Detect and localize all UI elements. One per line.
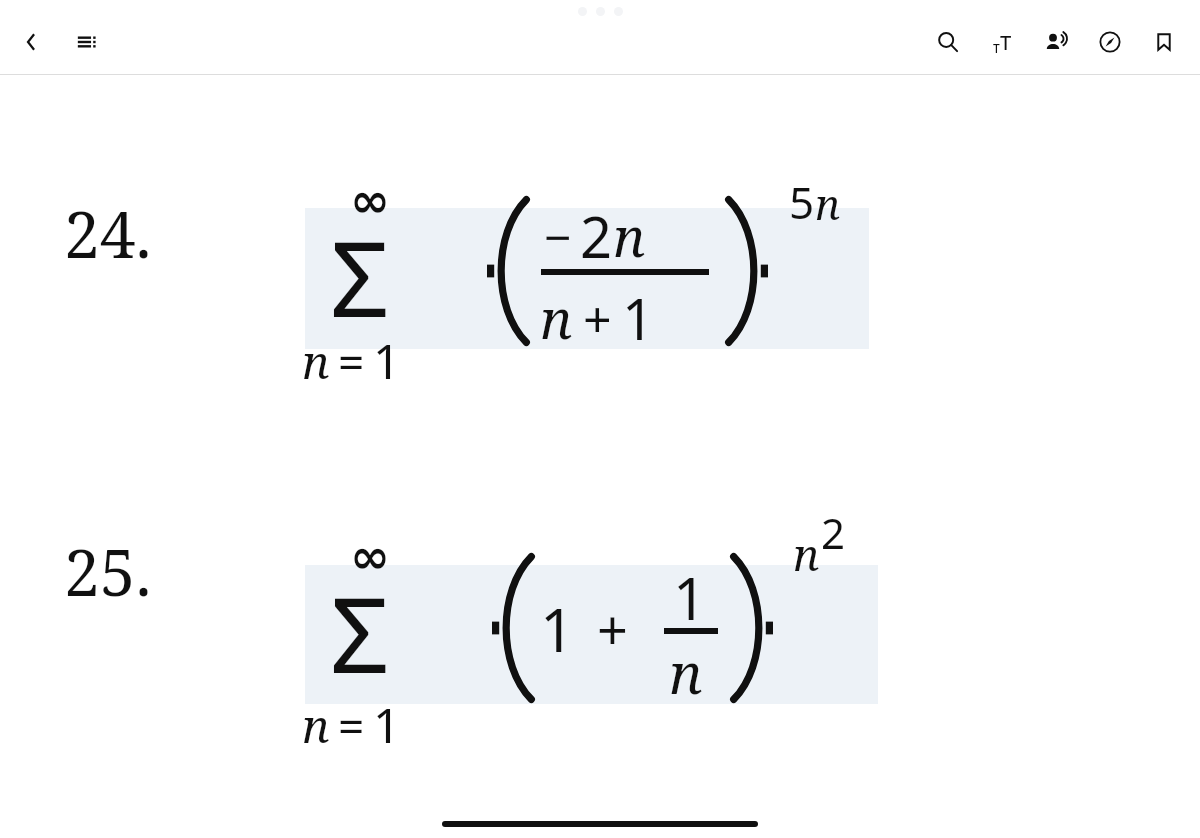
staticText: n <box>302 330 330 393</box>
staticText: Σ <box>330 562 390 704</box>
staticText: 1 <box>622 280 655 356</box>
button[interactable]: Table of contents <box>64 20 108 64</box>
staticText: T <box>993 40 1000 56</box>
staticText: 2 <box>580 198 613 274</box>
staticText: 2 <box>821 504 846 561</box>
staticText: ∞ <box>350 528 390 584</box>
staticText: T <box>1000 29 1012 56</box>
staticText: Σ <box>330 206 390 348</box>
staticText: 1 <box>373 692 401 757</box>
staticText: 1 <box>373 328 401 393</box>
staticText: n <box>815 175 841 232</box>
staticText: ∞ <box>350 172 390 228</box>
staticText: = <box>338 694 365 757</box>
staticText: + <box>583 284 612 352</box>
button[interactable]: Text size <box>980 20 1024 64</box>
staticText: 25. <box>64 528 152 615</box>
staticText: + <box>597 592 628 666</box>
staticText: 1 <box>673 558 707 637</box>
staticText: 24. <box>64 190 152 277</box>
button[interactable]: Search <box>926 20 970 64</box>
staticText: n <box>540 281 573 355</box>
staticText: n <box>302 694 330 757</box>
staticText: 5 <box>789 172 815 232</box>
button[interactable]: Back <box>10 20 54 64</box>
button[interactable]: Explore <box>1088 20 1132 64</box>
staticText: n <box>793 524 820 584</box>
button[interactable]: Read aloud <box>1034 20 1078 64</box>
button[interactable]: Bookmark <box>1142 20 1186 64</box>
staticText: n <box>613 199 646 273</box>
staticText: 1 <box>540 588 575 670</box>
staticText: − <box>544 204 572 269</box>
staticText: = <box>338 330 365 393</box>
staticText: n <box>669 634 703 710</box>
